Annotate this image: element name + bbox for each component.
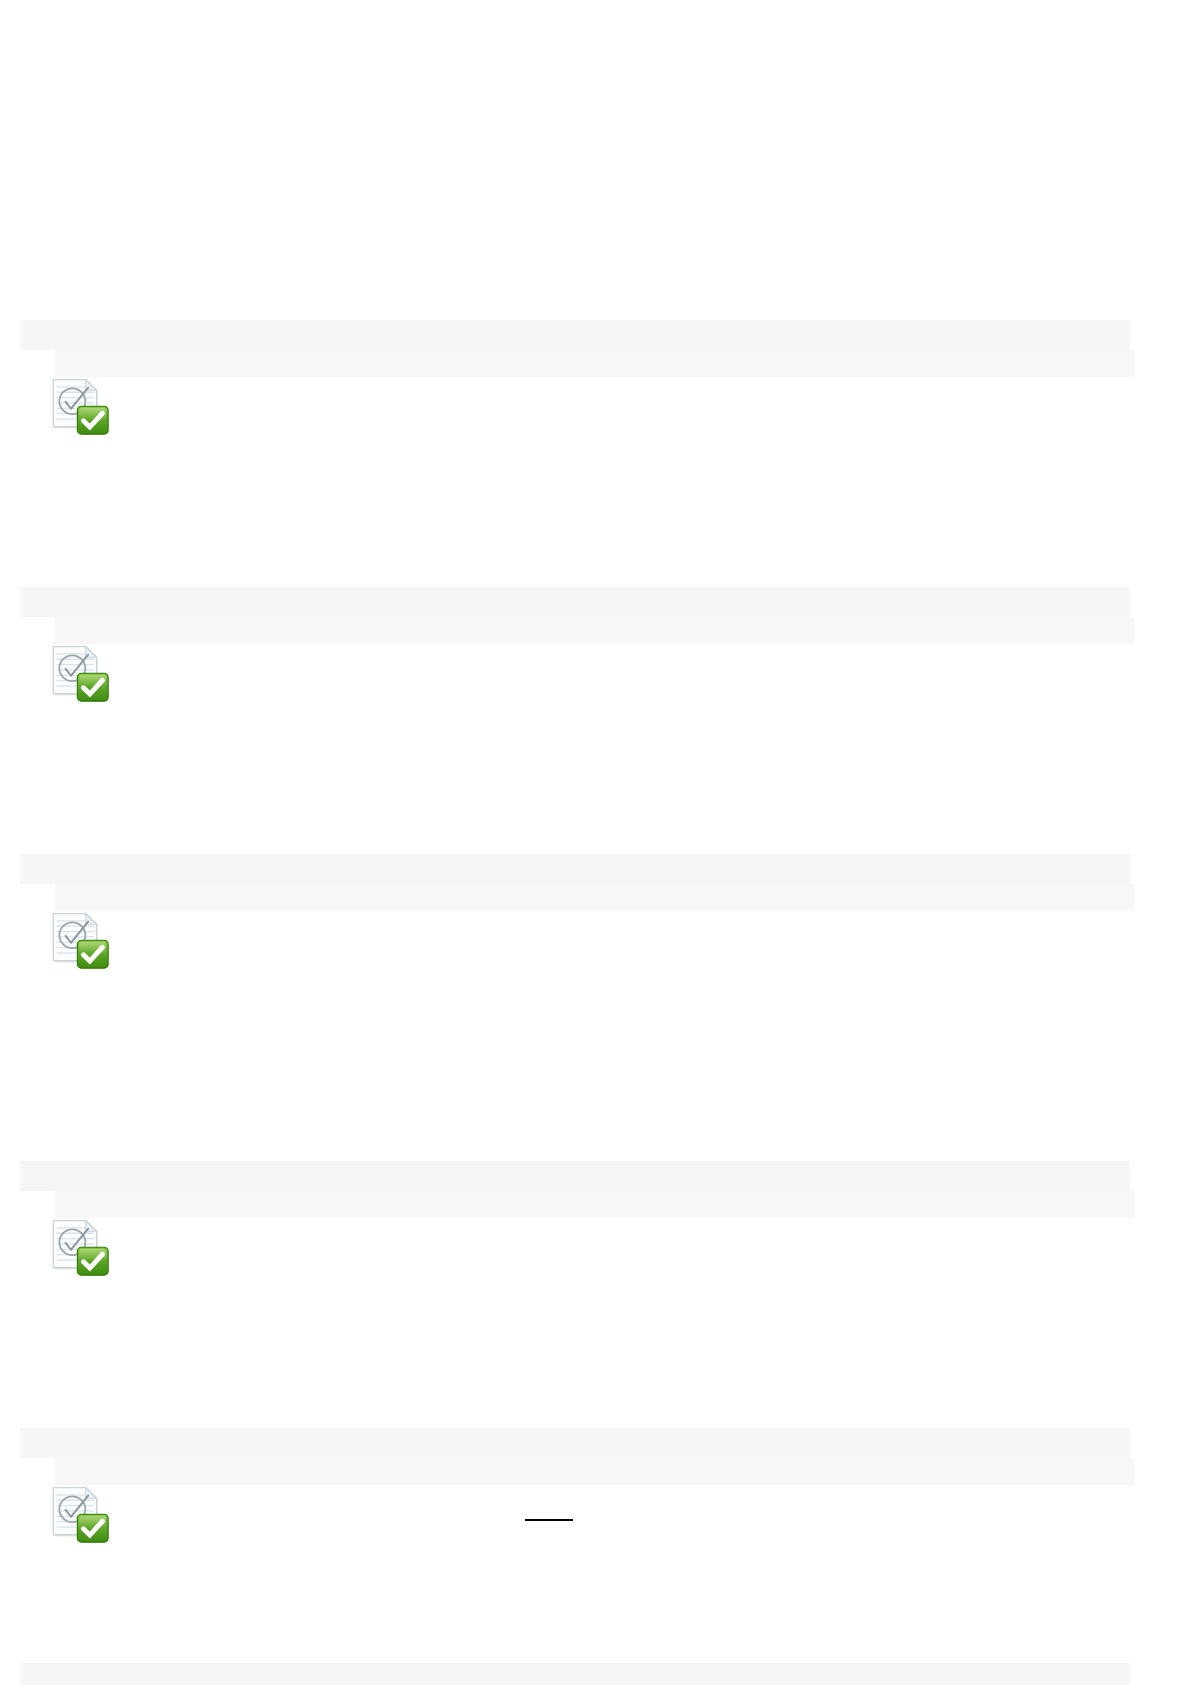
button[interactable]: Validated document [51, 1218, 109, 1276]
button[interactable]: Validated document [51, 1485, 109, 1543]
button[interactable]: Validated document [51, 644, 109, 702]
button[interactable]: Validated document [51, 377, 109, 435]
button[interactable]: Validated document [51, 911, 109, 969]
